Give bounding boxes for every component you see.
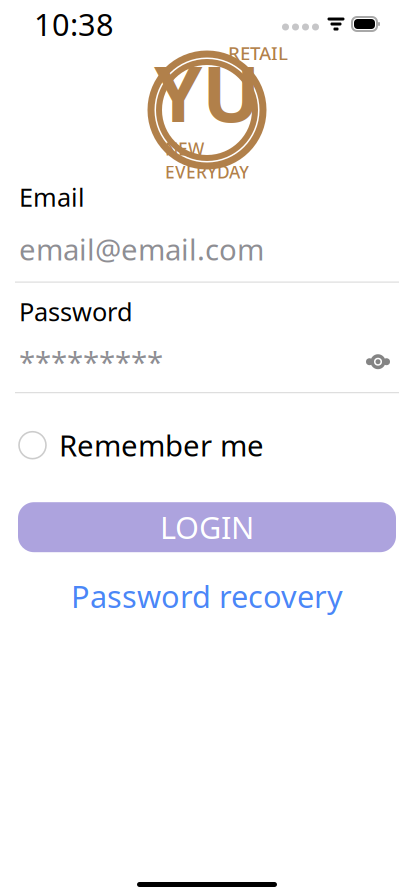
staticText: Password bbox=[19, 295, 133, 328]
button[interactable]: LOGIN bbox=[0, 502, 414, 552]
button[interactable]: Show password bbox=[361, 347, 395, 377]
staticText: Y bbox=[154, 41, 202, 143]
staticText: NEW EVERYDAY bbox=[165, 137, 249, 183]
staticText: Password recovery bbox=[71, 576, 343, 616]
button[interactable]: Password recovery bbox=[0, 579, 414, 613]
staticText: U bbox=[202, 41, 260, 143]
staticText: 10:38 bbox=[34, 4, 114, 44]
staticText: ********* bbox=[19, 342, 163, 381]
staticText: email@email.com bbox=[19, 230, 264, 269]
staticText: Remember me bbox=[59, 426, 264, 465]
staticText: Email bbox=[19, 180, 85, 214]
button[interactable]: Remember me bbox=[0, 423, 414, 467]
staticText: LOGIN bbox=[160, 507, 254, 547]
staticText: RETAIL bbox=[228, 41, 288, 65]
